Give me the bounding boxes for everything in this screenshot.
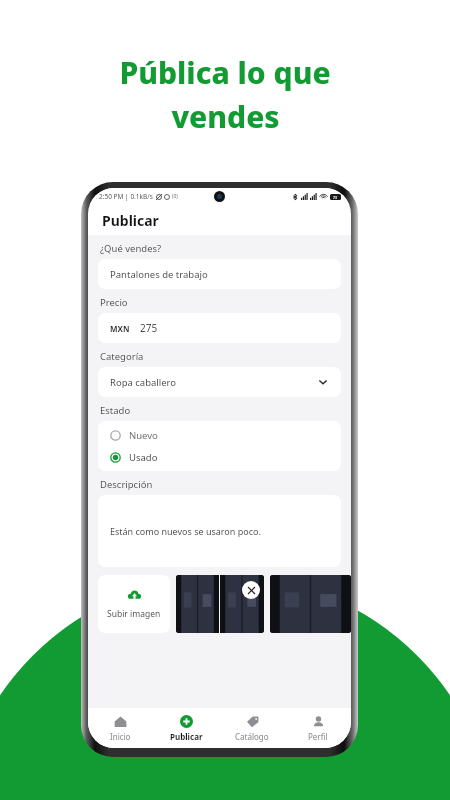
- button[interactable]: Subir imagen: [98, 575, 170, 633]
- button[interactable]: Nuevo: [110, 429, 329, 442]
- staticText: Catálogo: [235, 731, 269, 742]
- button[interactable]: Están como nuevos se usaron poco.: [98, 495, 341, 567]
- button[interactable]: [270, 575, 351, 633]
- button[interactable]: MXN: [98, 313, 341, 343]
- staticText: Categoría: [100, 350, 144, 363]
- button[interactable]: Catálogo: [219, 708, 285, 748]
- staticText: Perfil: [308, 731, 328, 742]
- button[interactable]: Perfil: [285, 708, 351, 748]
- staticText: 73: [333, 195, 338, 200]
- staticText: Están como nuevos se usaron poco.: [110, 525, 261, 537]
- staticText: Publicar: [170, 731, 203, 742]
- staticText: vendes: [171, 96, 280, 137]
- staticText: (0): [172, 193, 178, 200]
- staticText: Nuevo: [129, 429, 158, 442]
- staticText: Pública lo que: [119, 52, 331, 93]
- staticText: Inicio: [110, 731, 131, 742]
- button[interactable]: Usado: [110, 451, 329, 464]
- button[interactable]: Publicar: [153, 708, 219, 748]
- staticText: 275: [140, 321, 158, 335]
- staticText: MXN: [110, 323, 130, 334]
- staticText: Descripción: [100, 478, 153, 491]
- button[interactable]: [220, 575, 264, 633]
- button[interactable]: Quitar imagen: [242, 581, 260, 599]
- button[interactable]: [176, 575, 219, 633]
- staticText: Publicar: [102, 211, 159, 230]
- staticText: Subir imagen: [107, 608, 161, 620]
- staticText: Usado: [129, 451, 158, 464]
- staticText: Pantalones de trabajo: [110, 268, 208, 281]
- staticText: Ropa caballero: [110, 376, 177, 389]
- button[interactable]: Ropa caballero: [98, 367, 341, 397]
- staticText: Precio: [100, 296, 128, 309]
- staticText: 2:50 PM | 0.1kB/s: [99, 192, 153, 201]
- staticText: Estado: [100, 404, 131, 417]
- staticText: ¿Qué vendes?: [100, 242, 162, 255]
- button[interactable]: Inicio: [88, 708, 153, 748]
- button[interactable]: Pantalones de trabajo: [98, 259, 341, 289]
